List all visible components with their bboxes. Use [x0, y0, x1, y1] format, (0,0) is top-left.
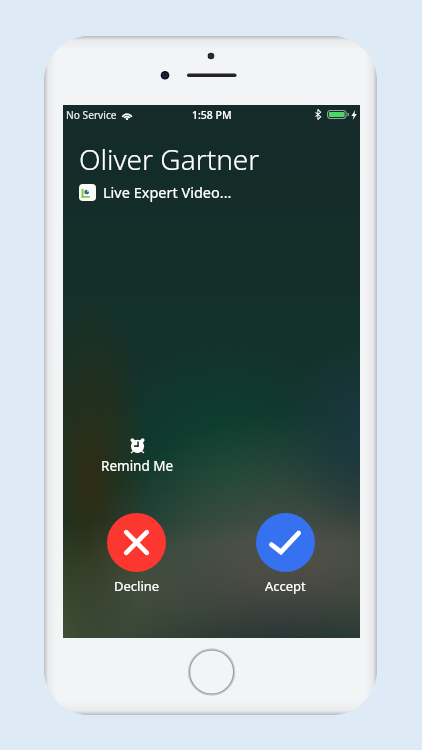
staticText: No Service	[66, 108, 117, 122]
staticText: Live Expert Video...	[103, 182, 232, 202]
button[interactable]: Remind Me	[98, 437, 176, 475]
button[interactable]: Accept	[256, 513, 315, 595]
staticText: Remind Me	[101, 457, 174, 475]
button[interactable]: Decline	[107, 513, 166, 595]
staticText: Decline	[114, 577, 160, 595]
other: Remind Me	[130, 437, 145, 453]
staticText: 1:58 PM	[192, 108, 232, 122]
staticText: Oliver Gartner	[79, 140, 260, 178]
staticText: Accept	[265, 577, 306, 595]
